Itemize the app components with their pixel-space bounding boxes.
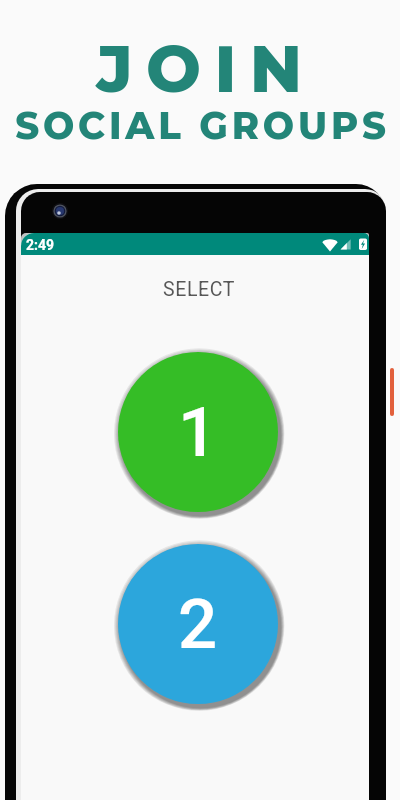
staticText: 1 [178, 392, 218, 473]
staticText: SOCIAL GROUPS [15, 103, 390, 148]
staticText: SELECT [25, 278, 369, 301]
button[interactable]: 1 [118, 352, 278, 512]
button[interactable]: 2 [118, 544, 278, 704]
staticText: JOIN [96, 29, 316, 108]
other: Front camera [52, 203, 68, 219]
staticText: 2:49 [26, 237, 55, 253]
staticText: 2 [178, 584, 218, 665]
